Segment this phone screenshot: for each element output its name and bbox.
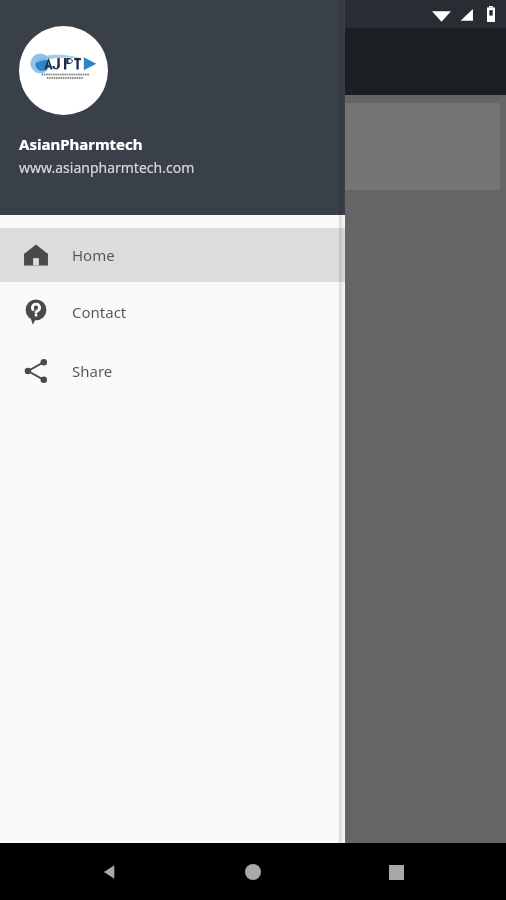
staticText: www.asianpharmtech.com [19,158,195,177]
button[interactable]: Contact [0,282,345,341]
staticText: Technology and Innovation [18,146,235,169]
button[interactable]: Home [231,850,275,894]
button[interactable]: Share [0,341,345,400]
button[interactable]: Asian Journal of Pharmaceutical [0,103,500,190]
staticText: Asian Journal of Pharmaceutical [18,119,272,142]
staticText: AsianPharmtech [19,134,143,154]
button[interactable]: Back [88,850,132,894]
staticText: Home [72,245,115,265]
button[interactable]: Home [0,228,345,282]
staticText: Contact [72,302,127,322]
staticText: Share [72,361,113,381]
button[interactable]: Recent apps [374,850,418,894]
